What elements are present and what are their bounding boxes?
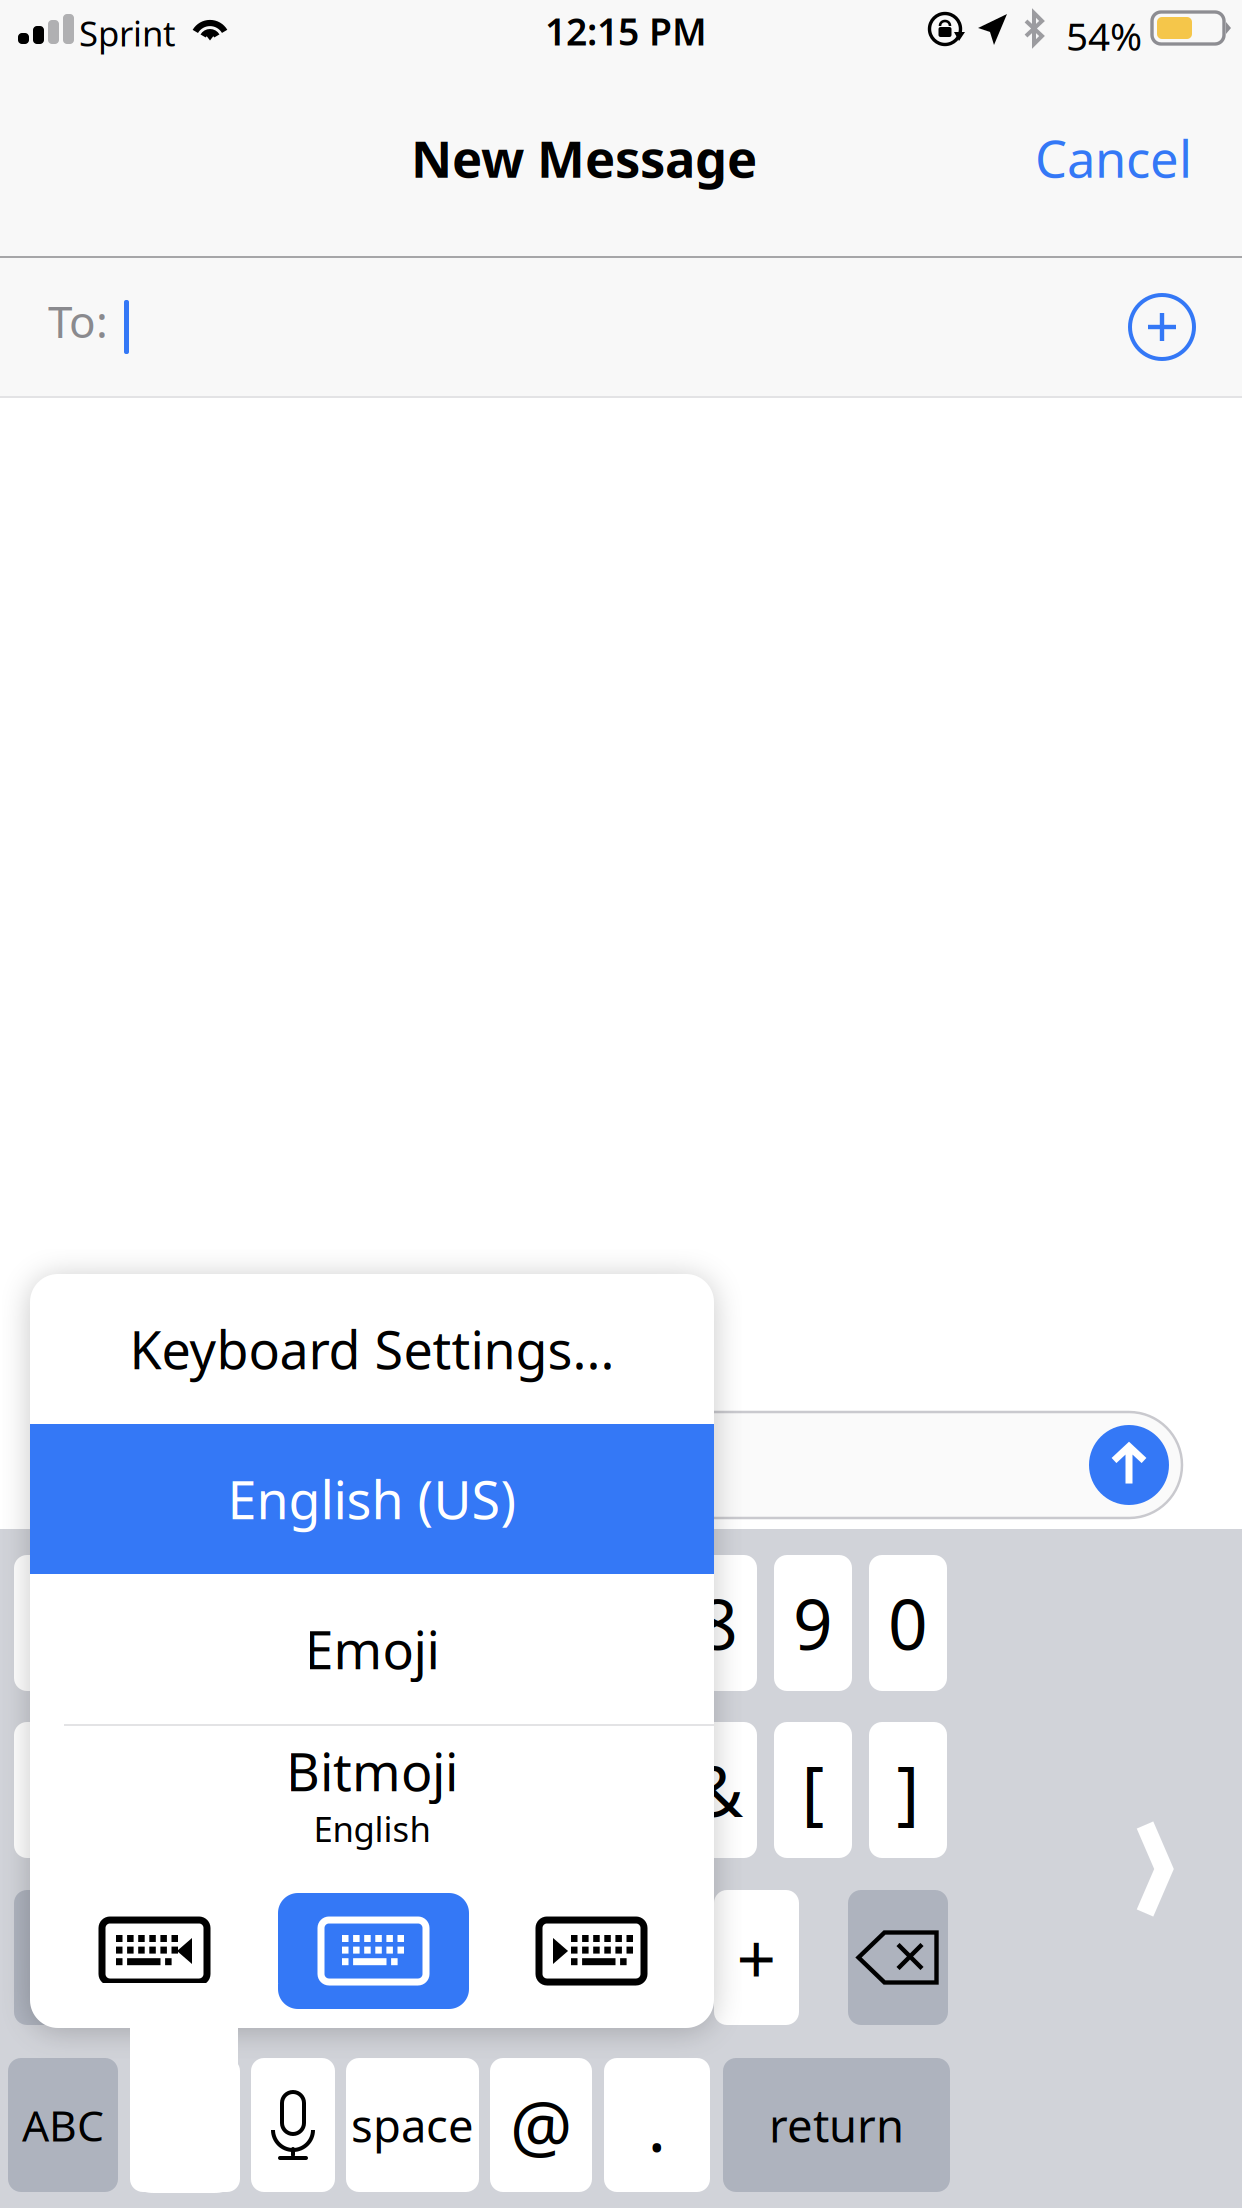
staticText: ! xyxy=(557,1911,576,2004)
button[interactable]: 2 xyxy=(109,1555,187,1691)
staticText: 5 xyxy=(413,1577,453,1669)
button[interactable]: #+= xyxy=(14,1890,159,2025)
button[interactable]: 1 xyxy=(14,1555,92,1691)
button[interactable]: ] xyxy=(869,1722,947,1858)
staticText: English (US) xyxy=(227,1464,516,1534)
staticText: @ xyxy=(510,2079,572,2171)
button[interactable]: ? xyxy=(429,1890,514,2025)
staticText: . xyxy=(272,1911,291,2004)
button[interactable]: . xyxy=(239,1890,324,2025)
button[interactable]: 0 xyxy=(869,1555,947,1691)
button[interactable]: . xyxy=(604,2058,710,2192)
button[interactable]: 3 xyxy=(204,1555,282,1691)
button[interactable]: Cancel xyxy=(1013,98,1214,218)
staticText: return xyxy=(769,2095,904,2155)
staticText: 4 xyxy=(318,1577,358,1669)
staticText: , xyxy=(367,1911,386,2004)
staticText: 54% xyxy=(1066,10,1142,61)
button[interactable]: ! xyxy=(524,1890,609,2025)
staticText: + xyxy=(736,1911,776,2004)
button[interactable]: @ xyxy=(490,2058,592,2192)
button[interactable]: ' xyxy=(619,1890,704,2025)
staticText: space xyxy=(351,2095,474,2155)
staticText: Bitmoji xyxy=(286,1736,458,1806)
staticText: 0 xyxy=(888,1577,928,1669)
button[interactable]: Current keyboard xyxy=(278,1893,469,2009)
button[interactable]: $ xyxy=(584,1722,662,1858)
staticText: #+= xyxy=(48,1929,124,1986)
button[interactable]: 8 xyxy=(679,1555,757,1691)
button[interactable]: Bitmoji xyxy=(30,1718,714,1870)
staticText: ? xyxy=(456,1911,486,2004)
button[interactable]: Next keyboard xyxy=(130,2058,240,2192)
staticText: Sprint xyxy=(79,10,176,56)
staticText: 9 xyxy=(793,1577,833,1669)
staticText: ; xyxy=(328,1744,347,1836)
button[interactable]: ( xyxy=(394,1722,472,1858)
staticText: ABC xyxy=(22,2097,104,2153)
staticText: New Message xyxy=(411,124,757,192)
button[interactable]: / xyxy=(109,1722,187,1858)
button[interactable]: + xyxy=(714,1890,799,2025)
button[interactable]: return xyxy=(723,2058,950,2192)
staticText: . xyxy=(647,2079,666,2171)
button[interactable]: Send xyxy=(1083,1419,1175,1511)
button[interactable]: English (US) xyxy=(30,1424,714,1574)
button[interactable]: space xyxy=(346,2058,479,2192)
button[interactable]: 7 xyxy=(584,1555,662,1691)
button[interactable]: - xyxy=(14,1722,92,1858)
button[interactable]: , xyxy=(334,1890,419,2025)
button[interactable]: 5 xyxy=(394,1555,472,1691)
button[interactable]: Emoji xyxy=(30,1574,714,1724)
staticText: Emoji xyxy=(304,1614,439,1684)
button[interactable]: ; xyxy=(299,1722,377,1858)
button[interactable]: : xyxy=(204,1722,282,1858)
button[interactable]: Keyboard Settings... xyxy=(30,1274,714,1424)
button[interactable]: 6 xyxy=(489,1555,567,1691)
button[interactable]: Previous keyboard xyxy=(82,1901,227,2001)
staticText: 8 xyxy=(698,1577,738,1669)
staticText: 12:15 PM xyxy=(545,6,707,56)
staticText: Keyboard Settings... xyxy=(129,1314,614,1384)
button[interactable]: ) xyxy=(489,1722,567,1858)
staticText: To: xyxy=(48,292,108,350)
button[interactable]: & xyxy=(679,1722,757,1858)
staticText: ( xyxy=(422,1744,443,1836)
button[interactable]: Delete xyxy=(848,1890,948,2025)
button[interactable]: Add contact xyxy=(1114,279,1210,375)
staticText: & xyxy=(692,1744,743,1836)
button[interactable]: 4 xyxy=(299,1555,377,1691)
button[interactable]: [ xyxy=(774,1722,852,1858)
button[interactable]: 9 xyxy=(774,1555,852,1691)
staticText: English xyxy=(313,1805,430,1851)
button[interactable]: Next keyboard xyxy=(519,1901,664,2001)
staticText: [ xyxy=(801,1744,824,1836)
button[interactable]: Dictate xyxy=(251,2058,335,2192)
staticText: Cancel xyxy=(1035,124,1192,192)
staticText: ] xyxy=(896,1744,919,1836)
button[interactable]: ABC xyxy=(8,2058,118,2192)
